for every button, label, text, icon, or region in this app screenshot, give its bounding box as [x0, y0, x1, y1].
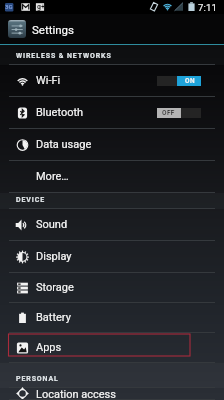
button[interactable]: Bluetooth: [0, 97, 224, 129]
staticText: Storage: [36, 281, 74, 294]
staticText: WIRELESS & NETWORKS: [16, 52, 112, 60]
button[interactable]: Apps: [0, 333, 224, 363]
button[interactable]: Battery: [0, 303, 224, 333]
staticText: g+: [37, 3, 45, 11]
button[interactable]: Settings: [0, 14, 224, 44]
staticText: Sound: [36, 218, 68, 231]
staticText: PERSONAL: [16, 375, 59, 383]
staticText: Wi-Fi: [36, 74, 61, 87]
button[interactable]: Storage: [0, 273, 224, 303]
staticText: Bluetooth: [36, 106, 84, 119]
button[interactable]: Sound: [0, 209, 224, 241]
staticText: Data usage: [36, 138, 92, 151]
staticText: 7:11: [198, 2, 218, 13]
staticText: Settings: [32, 23, 74, 36]
button[interactable]: Display: [0, 241, 224, 273]
button[interactable]: More…: [0, 161, 224, 193]
staticText: OFF: [162, 109, 175, 117]
staticText: 3G: [5, 3, 13, 10]
staticText: More…: [36, 170, 69, 183]
button[interactable]: ON: [157, 76, 201, 86]
button[interactable]: Location access: [0, 388, 224, 400]
button[interactable]: Data usage: [0, 129, 224, 161]
button[interactable]: OFF: [157, 108, 201, 118]
staticText: DEVICE: [16, 196, 46, 204]
staticText: Location access: [36, 388, 116, 399]
staticText: Battery: [36, 311, 71, 324]
staticText: Display: [36, 250, 72, 263]
button[interactable]: Wi-Fi: [0, 65, 224, 97]
staticText: ON: [185, 77, 195, 85]
staticText: Apps: [36, 341, 62, 354]
